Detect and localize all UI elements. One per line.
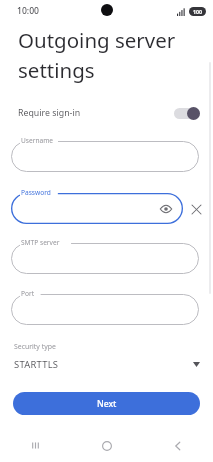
button[interactable]: Show password [159,202,172,215]
button[interactable]: Back [142,429,213,462]
staticText: Require sign-in [18,107,81,119]
staticText: 10:00 [17,5,40,17]
button[interactable]: Show password [11,193,183,224]
button[interactable]: Security type [0,342,213,371]
button[interactable]: Home [71,429,142,462]
staticText: Password [21,188,51,197]
button[interactable] [11,294,199,325]
button[interactable]: Clear [188,201,204,217]
staticText: Outgoing server [18,26,176,54]
staticText: 100 [193,8,203,15]
button[interactable]: Recents [0,429,71,462]
staticText: Username [21,136,54,145]
staticText: Security type [14,342,56,351]
staticText: STARTTLS [14,358,59,371]
staticText: Port [21,289,35,298]
button[interactable]: Next [13,392,200,415]
staticText: SMTP server [21,238,60,247]
staticText: Next [97,398,117,410]
button[interactable] [11,243,199,274]
button[interactable] [11,141,199,172]
button[interactable]: Require sign-in [0,101,213,125]
staticText: settings [18,56,95,84]
